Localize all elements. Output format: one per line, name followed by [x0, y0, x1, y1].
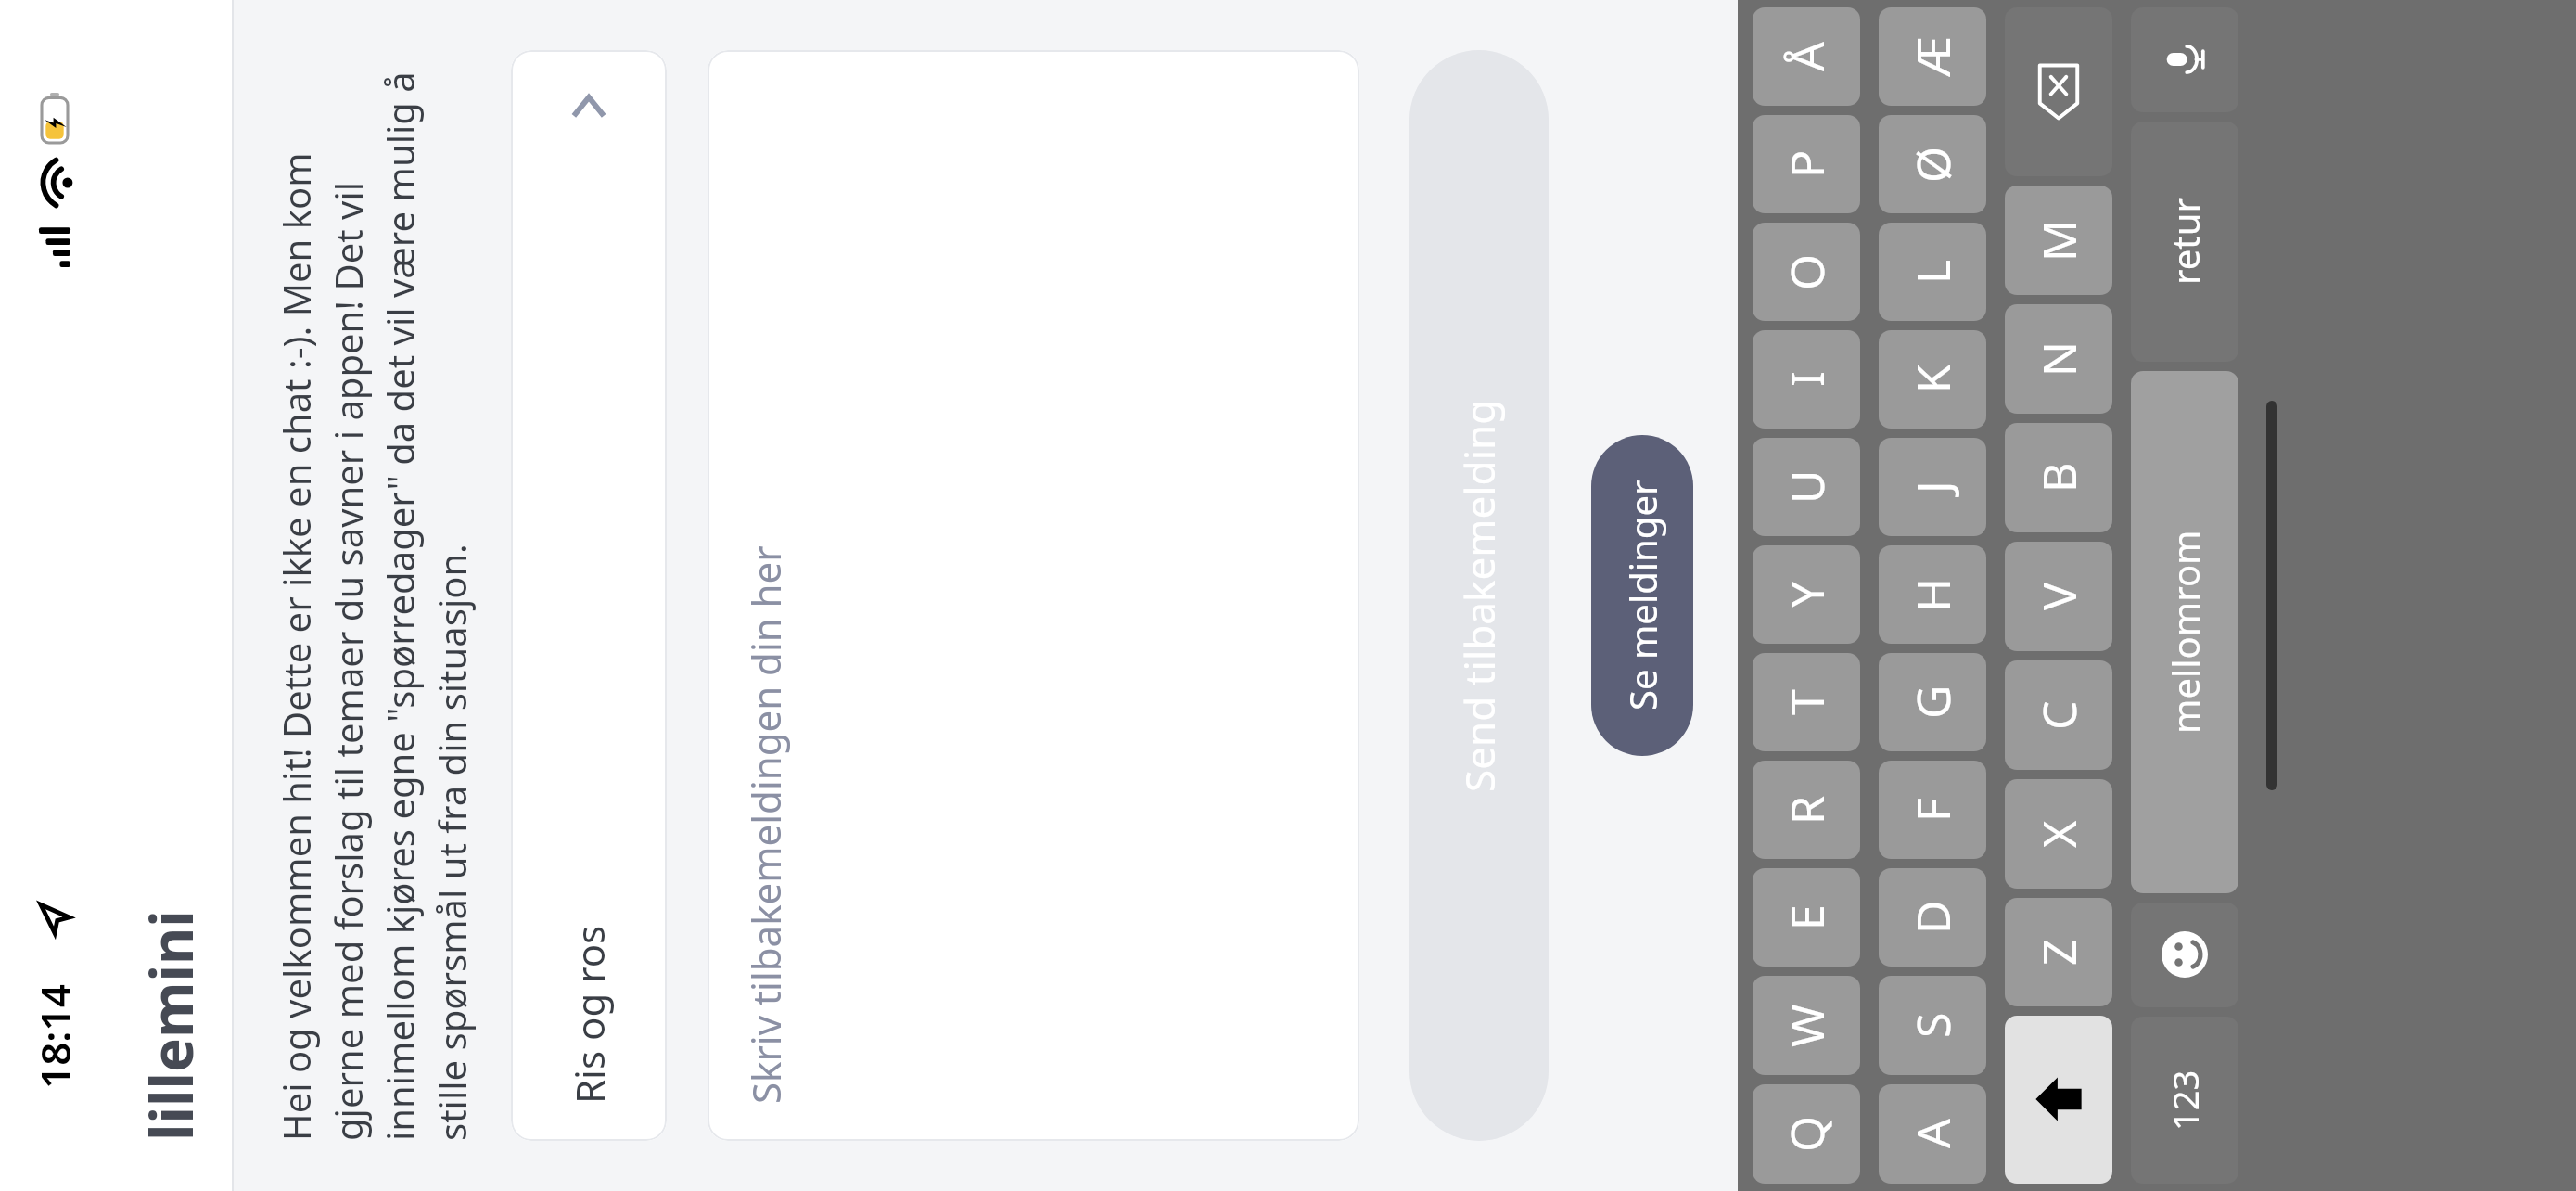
button[interactable]: H: [1879, 545, 1986, 644]
button[interactable]: mellomrom: [2131, 371, 2238, 893]
button[interactable]: Emoji: [2131, 903, 2238, 1007]
button[interactable]: C: [2005, 660, 2112, 770]
staticText: Hei og velkommen hit! Dette er ikke en c…: [271, 50, 478, 1141]
staticText: Skriv tilbakemeldingen din her: [739, 545, 792, 1104]
staticText: X: [2027, 820, 2090, 848]
button[interactable]: M: [2005, 186, 2112, 295]
button[interactable]: Shift: [2005, 1016, 2112, 1184]
staticText: C: [2027, 700, 2090, 730]
button[interactable]: I: [1753, 330, 1860, 429]
button[interactable]: Backspace: [2005, 7, 2112, 176]
staticText: P: [1775, 149, 1838, 178]
staticText: W: [1775, 1004, 1838, 1047]
staticText: L: [1901, 259, 1964, 284]
button[interactable]: B: [2005, 423, 2112, 532]
staticText: Æ: [1901, 35, 1964, 77]
staticText: Send tilbakemelding: [1451, 399, 1507, 792]
staticText: R: [1775, 795, 1838, 825]
staticText: mellomrom: [2160, 530, 2210, 734]
staticText: N: [2027, 341, 2090, 377]
button[interactable]: F: [1879, 761, 1986, 859]
button[interactable]: Ø: [1879, 115, 1986, 213]
button[interactable]: R: [1753, 761, 1860, 859]
button[interactable]: W: [1753, 976, 1860, 1075]
staticText: S: [1901, 1012, 1964, 1038]
button[interactable]: Å: [1753, 7, 1860, 106]
button[interactable]: Skriv tilbakemeldingen din her: [708, 50, 1359, 1141]
staticText: T: [1775, 689, 1838, 715]
staticText: Ris og ros: [563, 925, 616, 1104]
button[interactable]: Se meldinger: [1591, 435, 1693, 756]
button[interactable]: retur: [2131, 122, 2238, 362]
button[interactable]: Y: [1753, 545, 1860, 644]
button[interactable]: V: [2005, 542, 2112, 651]
staticText: G: [1901, 685, 1964, 719]
button[interactable]: Q: [1753, 1084, 1860, 1184]
staticText: Ø: [1901, 146, 1964, 183]
staticText: U: [1775, 469, 1838, 504]
button[interactable]: U: [1753, 438, 1860, 536]
button[interactable]: K: [1879, 330, 1986, 429]
staticText: M: [2027, 219, 2090, 262]
staticText: lillemini: [132, 910, 210, 1141]
staticText: Q: [1775, 1115, 1838, 1152]
staticText: retur: [2160, 198, 2210, 285]
button[interactable]: Dictation: [2131, 7, 2238, 112]
staticText: F: [1901, 798, 1964, 822]
button[interactable]: J: [1879, 438, 1986, 536]
button[interactable]: O: [1753, 223, 1860, 321]
staticText: V: [2027, 583, 2090, 610]
button[interactable]: 123: [2131, 1017, 2238, 1184]
button[interactable]: X: [2005, 779, 2112, 889]
button[interactable]: T: [1753, 653, 1860, 751]
button[interactable]: N: [2005, 304, 2112, 414]
staticText: K: [1901, 365, 1964, 393]
staticText: Z: [2027, 939, 2090, 966]
staticText: H: [1901, 577, 1964, 612]
button[interactable]: D: [1879, 868, 1986, 967]
button[interactable]: Æ: [1879, 7, 1986, 106]
button[interactable]: P: [1753, 115, 1860, 213]
staticText: Y: [1775, 581, 1838, 608]
button[interactable]: Send tilbakemelding: [1409, 50, 1549, 1141]
staticText: O: [1775, 253, 1838, 290]
button[interactable]: L: [1879, 223, 1986, 321]
button[interactable]: E: [1753, 868, 1860, 967]
staticText: J: [1901, 480, 1964, 493]
staticText: B: [2027, 462, 2090, 493]
staticText: E: [1775, 904, 1838, 930]
button[interactable]: Ris og ros: [511, 50, 667, 1141]
staticText: Se meldinger: [1617, 480, 1667, 711]
button[interactable]: A: [1879, 1084, 1986, 1184]
staticText: 123: [2161, 1069, 2209, 1131]
button[interactable]: S: [1879, 976, 1986, 1075]
staticText: A: [1901, 1119, 1964, 1148]
staticText: I: [1775, 371, 1838, 387]
button[interactable]: G: [1879, 653, 1986, 751]
staticText: Å: [1775, 42, 1838, 71]
staticText: D: [1901, 900, 1964, 934]
button[interactable]: Z: [2005, 898, 2112, 1006]
staticText: 18:14: [27, 984, 83, 1089]
